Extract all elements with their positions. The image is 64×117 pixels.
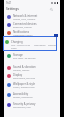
staticText: Display, interaction [13, 96, 33, 99]
button[interactable]: Security & privacy [4, 101, 60, 109]
button[interactable]: Storage [4, 52, 60, 60]
staticText: Charging [11, 40, 23, 44]
staticText: Mobile, Wi-Fi, hotspot [13, 18, 36, 21]
staticText: 76% - Full by 10:30 [11, 44, 30, 47]
staticText: Connected devices [13, 22, 37, 26]
staticText: Notifications [13, 30, 29, 34]
staticText: Settings [6, 6, 19, 10]
button[interactable]: Accessibility [4, 91, 60, 99]
button[interactable]: Connected devices [4, 21, 60, 29]
staticText: Volume, haptics [13, 69, 30, 72]
button[interactable]: Display [4, 72, 60, 80]
staticText: Sound & vibration [13, 65, 36, 69]
staticText: Security & privacy [13, 102, 36, 106]
button[interactable]: Network & internet [4, 13, 60, 21]
button[interactable]: Sound & vibration [4, 64, 60, 72]
button[interactable]: Charging [4, 40, 60, 50]
staticText: View details [34, 44, 46, 47]
staticText: Wallpaper & style [13, 82, 35, 86]
staticText: Network & internet [13, 14, 38, 18]
button[interactable]: Search settings [48, 6, 55, 13]
staticText: Colors, themed icons [13, 86, 35, 89]
staticText: Display [13, 73, 23, 77]
staticText: 9:41 [6, 1, 12, 5]
staticText: Settings [48, 44, 56, 47]
staticText: Notification history [13, 34, 33, 37]
staticText: Saver [11, 47, 17, 50]
staticText: Storage [13, 53, 23, 57]
staticText: Accessibility [13, 92, 29, 96]
staticText: Permissions, lock [13, 106, 31, 109]
staticText: Bluetooth, pairing [13, 26, 32, 29]
button[interactable]: Notifications [4, 29, 60, 37]
button[interactable]: Wallpaper & style [4, 81, 60, 89]
staticText: 45% used - 68 GB free [13, 57, 36, 60]
staticText: Dark theme, font size [13, 77, 35, 80]
